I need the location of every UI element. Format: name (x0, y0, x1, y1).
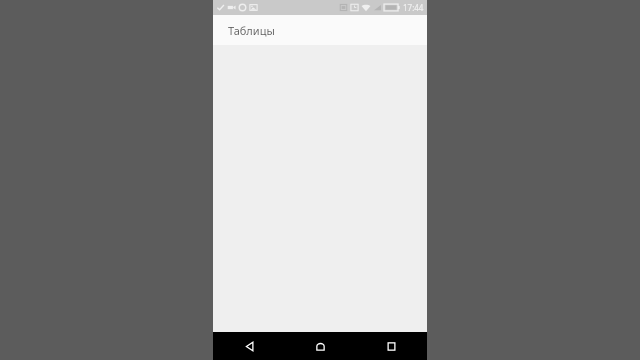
staticText: Таблицы (228, 23, 275, 38)
staticText: 17:44 (403, 2, 424, 13)
button[interactable]: Back (213, 332, 285, 360)
button[interactable]: Home (285, 332, 356, 360)
button[interactable]: Recent apps (356, 332, 427, 360)
